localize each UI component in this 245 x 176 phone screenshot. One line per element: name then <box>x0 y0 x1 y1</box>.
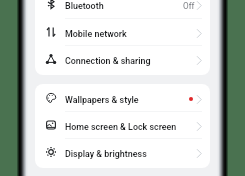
button[interactable]: Display & brightness <box>35 140 210 167</box>
staticText: Display & brightness <box>65 149 147 159</box>
staticText: Bluetooth <box>65 1 104 11</box>
staticText: Wallpapers & style <box>65 95 139 105</box>
button[interactable]: Home screen & Lock screen <box>35 113 210 140</box>
button[interactable]: Connection & sharing <box>35 47 210 74</box>
staticText: Mobile network <box>65 29 127 39</box>
button[interactable]: Mobile network <box>35 20 210 47</box>
staticText: Home screen & Lock screen <box>65 122 177 132</box>
staticText: Connection & sharing <box>65 56 151 66</box>
staticText: Off <box>183 1 195 11</box>
button[interactable]: Wallpapers & style <box>35 86 210 113</box>
button[interactable]: Bluetooth <box>35 0 210 19</box>
